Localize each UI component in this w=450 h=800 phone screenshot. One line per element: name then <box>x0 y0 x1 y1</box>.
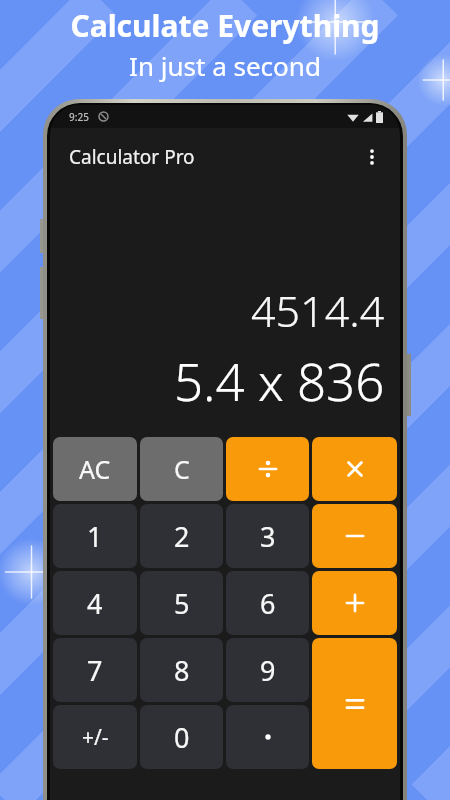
staticText: 4514.4 <box>251 281 385 340</box>
button[interactable]: 7 <box>53 638 137 702</box>
staticText: In just a second <box>129 48 321 83</box>
staticText: 9:25 <box>69 110 89 124</box>
button[interactable]: Equals <box>312 638 397 769</box>
staticText: Calculate Everything <box>70 5 380 46</box>
staticText: 4 <box>87 585 103 622</box>
other: Decimal point <box>253 722 283 752</box>
staticText: 5.4 x 836 <box>174 346 385 415</box>
staticText: 7 <box>87 652 103 689</box>
button[interactable]: 6 <box>226 571 309 635</box>
button[interactable]: More options <box>353 138 391 176</box>
button[interactable]: 2 <box>140 504 223 568</box>
staticText: AC <box>79 452 111 486</box>
staticText: 0 <box>174 719 190 756</box>
button[interactable]: AC <box>53 437 137 501</box>
button[interactable]: 3 <box>226 504 309 568</box>
button[interactable]: Divide <box>226 437 309 501</box>
other: Divide <box>253 454 283 484</box>
staticText: 5 <box>174 585 190 622</box>
staticText: 3 <box>260 518 276 555</box>
button[interactable]: 1 <box>53 504 137 568</box>
staticText: 9 <box>260 652 276 689</box>
staticText: C <box>174 452 190 486</box>
button[interactable]: Add <box>312 571 397 635</box>
button[interactable]: 0 <box>140 705 223 769</box>
staticText: 6 <box>260 585 276 622</box>
other: Subtract <box>340 521 370 551</box>
other: Add <box>340 588 370 618</box>
button[interactable]: 9 <box>226 638 309 702</box>
other: Multiply <box>340 454 370 484</box>
button[interactable]: Multiply <box>312 437 397 501</box>
staticText: 8 <box>174 652 190 689</box>
button[interactable]: 8 <box>140 638 223 702</box>
button[interactable]: 5 <box>140 571 223 635</box>
button[interactable]: Decimal point <box>226 705 309 769</box>
other: Equals <box>340 689 370 719</box>
button[interactable]: +/- <box>53 705 137 769</box>
button[interactable]: Subtract <box>312 504 397 568</box>
staticText: 2 <box>174 518 190 555</box>
staticText: +/- <box>82 723 109 752</box>
staticText: 1 <box>87 518 103 555</box>
button[interactable]: 4 <box>53 571 137 635</box>
staticText: Calculator Pro <box>69 144 195 170</box>
button[interactable]: C <box>140 437 223 501</box>
